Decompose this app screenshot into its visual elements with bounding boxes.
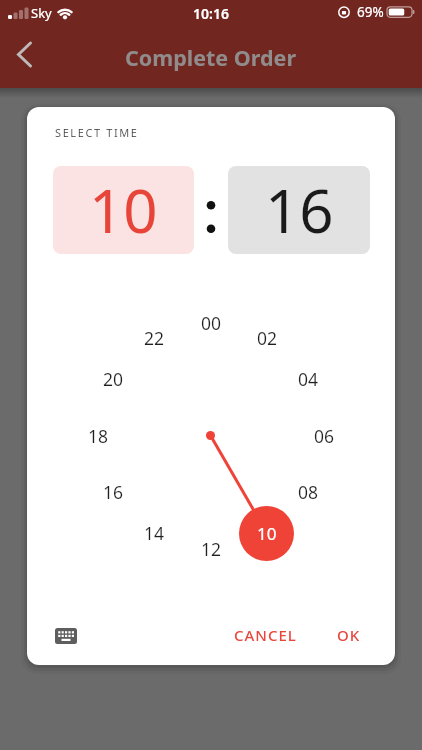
button[interactable]: CANCEL xyxy=(210,615,320,655)
staticText: 02 xyxy=(257,326,278,350)
staticText: Sky xyxy=(31,4,52,22)
button[interactable]: OK xyxy=(314,615,384,655)
staticText: 18 xyxy=(88,424,109,448)
staticText: 69% xyxy=(357,3,384,21)
button[interactable]: 10 xyxy=(239,506,294,561)
button[interactable]: 16 xyxy=(228,166,370,254)
staticText: OK xyxy=(337,625,361,645)
staticText: 14 xyxy=(144,521,165,545)
staticText: CANCEL xyxy=(234,625,297,645)
staticText: 10:16 xyxy=(193,4,229,23)
staticText: SELECT TIME xyxy=(55,125,139,140)
staticText: 20 xyxy=(103,367,124,391)
button[interactable] xyxy=(46,616,86,656)
button[interactable]: 10 xyxy=(53,166,194,254)
staticText: 06 xyxy=(314,424,335,448)
staticText: 16 xyxy=(265,169,334,251)
button[interactable] xyxy=(6,41,42,77)
staticText: 12 xyxy=(201,537,222,561)
staticText: 00 xyxy=(201,311,222,335)
staticText: 08 xyxy=(298,480,319,504)
staticText: 16 xyxy=(103,480,124,504)
staticText: Complete Order xyxy=(125,43,297,72)
staticText: 22 xyxy=(144,326,165,350)
staticText: 10 xyxy=(257,522,277,545)
staticText: 10 xyxy=(89,169,158,251)
staticText: 04 xyxy=(298,367,319,391)
